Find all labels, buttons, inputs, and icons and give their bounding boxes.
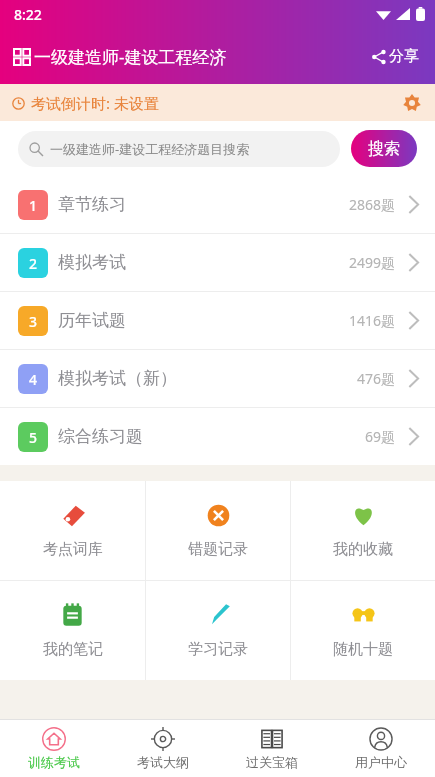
staticText: 模拟考试（新）: [58, 368, 177, 389]
staticText: 学习记录: [188, 640, 248, 659]
button[interactable]: 1: [0, 176, 435, 233]
button[interactable]: 错题记录: [146, 481, 290, 580]
staticText: 69题: [365, 427, 396, 446]
staticText: 历年试题: [58, 310, 126, 331]
staticText: 一级建造师-建设工程经济: [34, 45, 227, 68]
button[interactable]: 学习记录: [146, 581, 290, 680]
staticText: 用户中心: [355, 754, 407, 770]
button[interactable]: 考试倒计时: 未设置: [0, 84, 435, 121]
staticText: 4: [29, 370, 38, 389]
button[interactable]: 3: [0, 292, 435, 349]
button[interactable]: 搜索: [351, 130, 417, 167]
staticText: 模拟考试: [58, 252, 126, 273]
staticText: 章节练习: [58, 194, 126, 215]
staticText: 错题记录: [188, 540, 248, 559]
staticText: 2868题: [349, 195, 396, 214]
staticText: 1416题: [349, 311, 396, 330]
staticText: 分享: [389, 47, 419, 66]
staticText: 5: [29, 428, 38, 447]
staticText: 搜索: [368, 139, 400, 159]
staticText: 476题: [357, 369, 396, 388]
staticText: 我的笔记: [43, 640, 103, 659]
button[interactable]: 随机十题: [291, 581, 435, 680]
staticText: 2: [29, 254, 38, 273]
button[interactable]: 2: [0, 234, 435, 291]
button[interactable]: 考点词库: [0, 481, 145, 580]
staticText: 2499题: [349, 253, 396, 272]
staticText: 综合练习题: [58, 426, 143, 447]
staticText: 过关宝箱: [246, 754, 298, 770]
button[interactable]: 一级建造师-建设工程经济题目搜索: [18, 131, 340, 167]
staticText: 3: [29, 312, 38, 331]
button[interactable]: 我的收藏: [291, 481, 435, 580]
button[interactable]: 过关宝箱: [217, 720, 326, 777]
button[interactable]: 用户中心: [326, 720, 435, 777]
button[interactable]: 5: [0, 408, 435, 465]
staticText: 8:22: [14, 5, 42, 24]
staticText: 训练考试: [28, 754, 80, 770]
button[interactable]: 分享: [368, 43, 423, 70]
staticText: 我的收藏: [333, 540, 393, 559]
staticText: 一级建造师-建设工程经济题目搜索: [50, 140, 250, 158]
staticText: 考点词库: [43, 540, 103, 559]
staticText: 随机十题: [333, 640, 393, 659]
staticText: 1: [29, 196, 38, 215]
staticText: 考试大纲: [137, 754, 189, 770]
button[interactable]: 4: [0, 350, 435, 407]
staticText: 考试倒计时: 未设置: [31, 93, 159, 113]
button[interactable]: 考试大纲: [108, 720, 217, 777]
button[interactable]: Settings: [399, 90, 425, 116]
button[interactable]: 训练考试: [0, 720, 108, 777]
button[interactable]: 我的笔记: [0, 581, 145, 680]
